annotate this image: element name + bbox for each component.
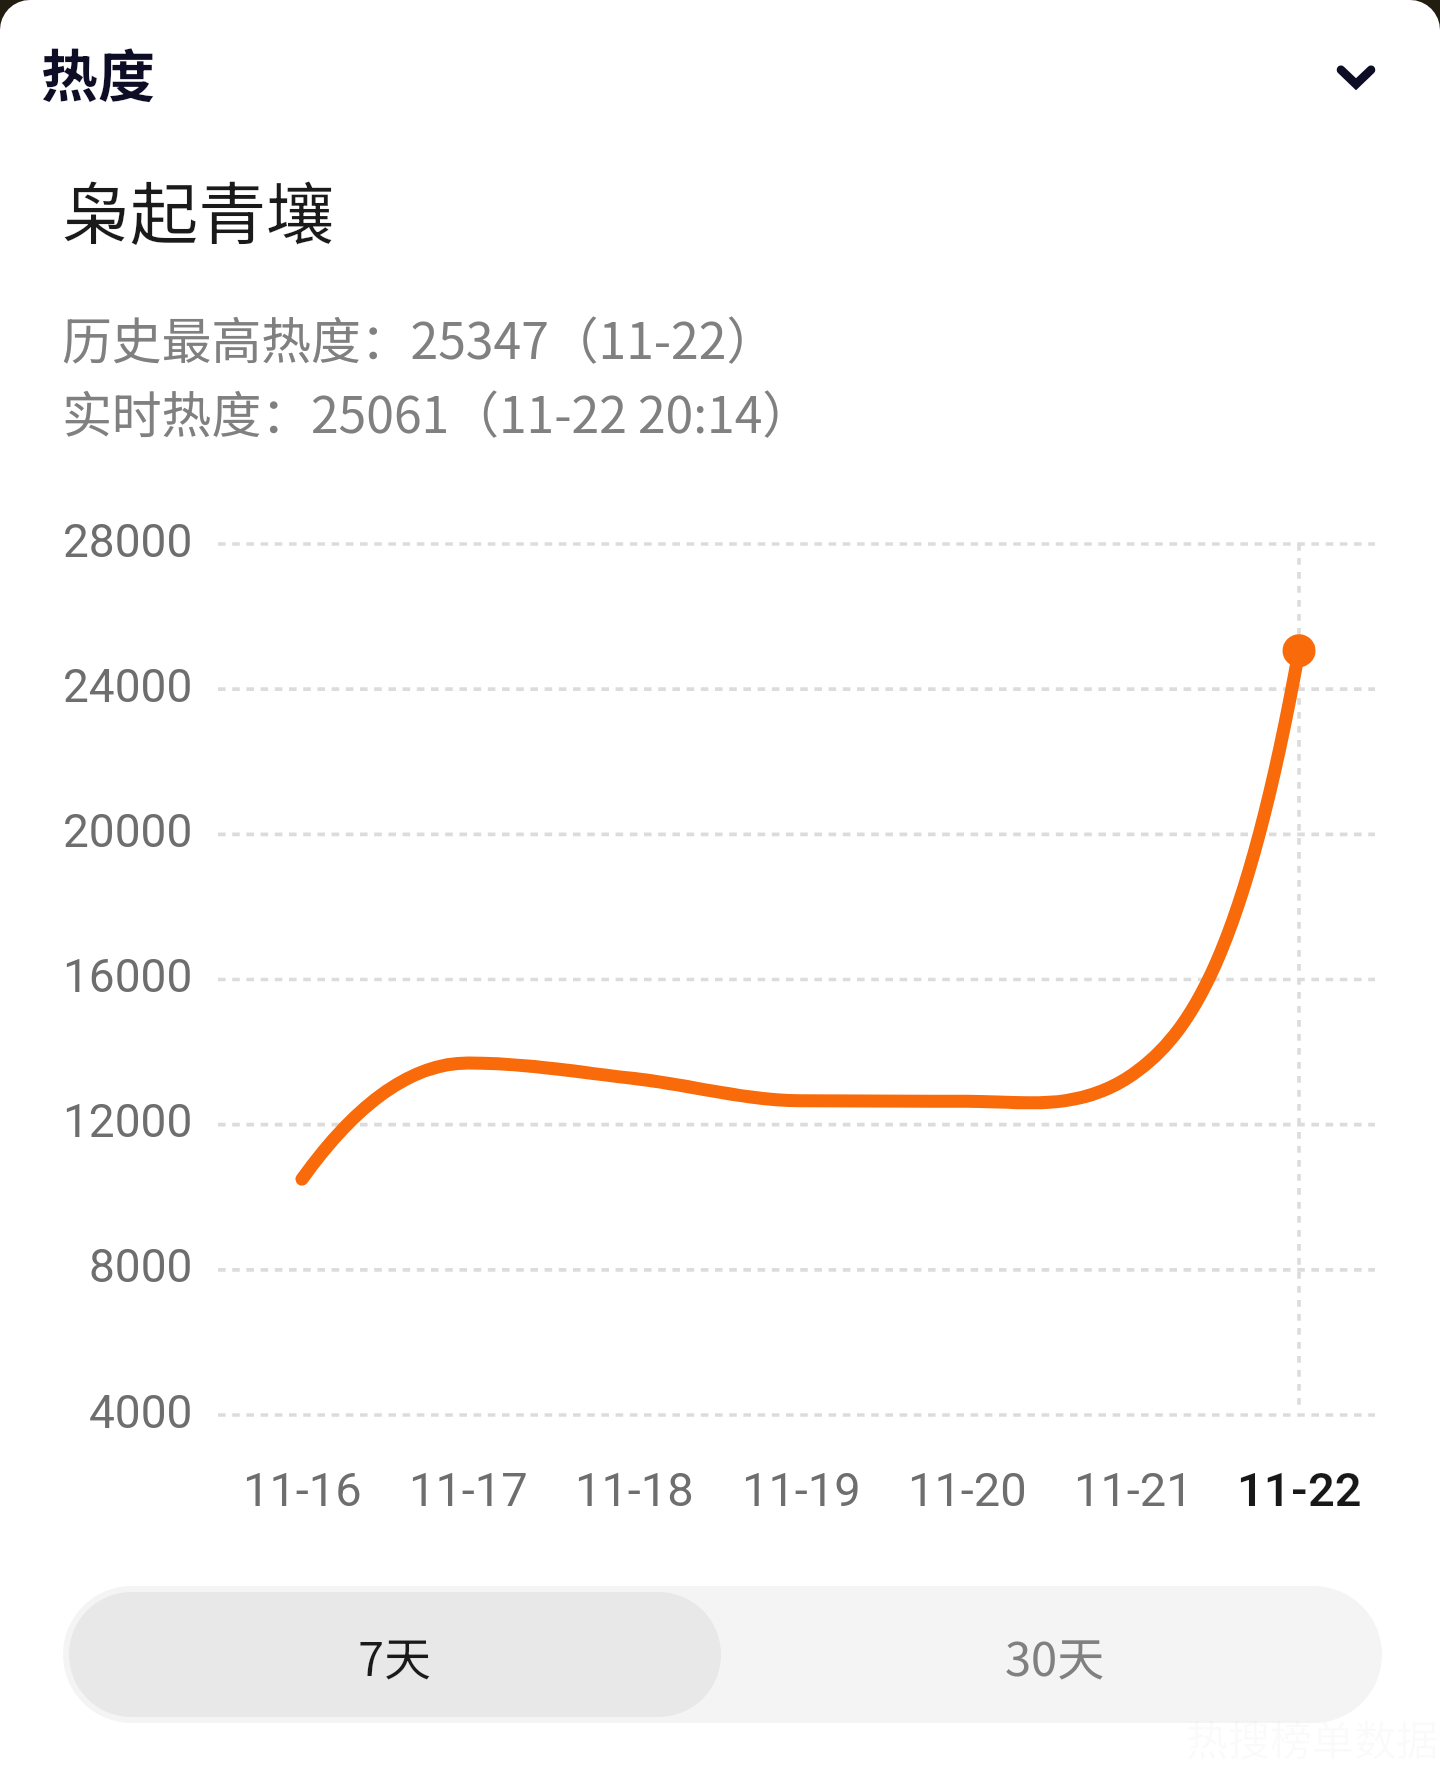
button[interactable]: 7天 [69, 1592, 721, 1717]
staticText: 16000 [63, 949, 193, 1003]
staticText: 8000 [89, 1239, 193, 1293]
staticText: 12000 [63, 1094, 193, 1148]
button[interactable]: 30天 [727, 1586, 1382, 1723]
staticText: 28000 [63, 514, 193, 568]
staticText: 20000 [63, 804, 193, 858]
staticText: 热度 [41, 31, 155, 114]
staticText: 11-22 [1237, 1462, 1362, 1517]
staticText: 11-17 [409, 1462, 528, 1517]
staticText: 历史最高热度：25347（11-22） [62, 301, 777, 373]
staticText: 24000 [63, 659, 193, 713]
button[interactable]: 热度 [20, 11, 300, 131]
staticText: 枭起青壤 [62, 160, 335, 258]
staticText: 11-19 [742, 1462, 861, 1517]
button[interactable]: Collapse chart [1306, 27, 1406, 127]
staticText: 11-21 [1074, 1462, 1193, 1517]
staticText: 11-18 [575, 1462, 694, 1517]
staticText: 11-16 [243, 1462, 362, 1517]
staticText: 热搜榜单数据 [1186, 1707, 1439, 1768]
staticText: 实时热度：25061（11-22 20:14） [62, 375, 813, 447]
staticText: 7天 [358, 1621, 432, 1689]
staticText: 11-20 [908, 1462, 1027, 1517]
staticText: 30天 [1005, 1621, 1105, 1689]
staticText: 4000 [89, 1385, 193, 1439]
